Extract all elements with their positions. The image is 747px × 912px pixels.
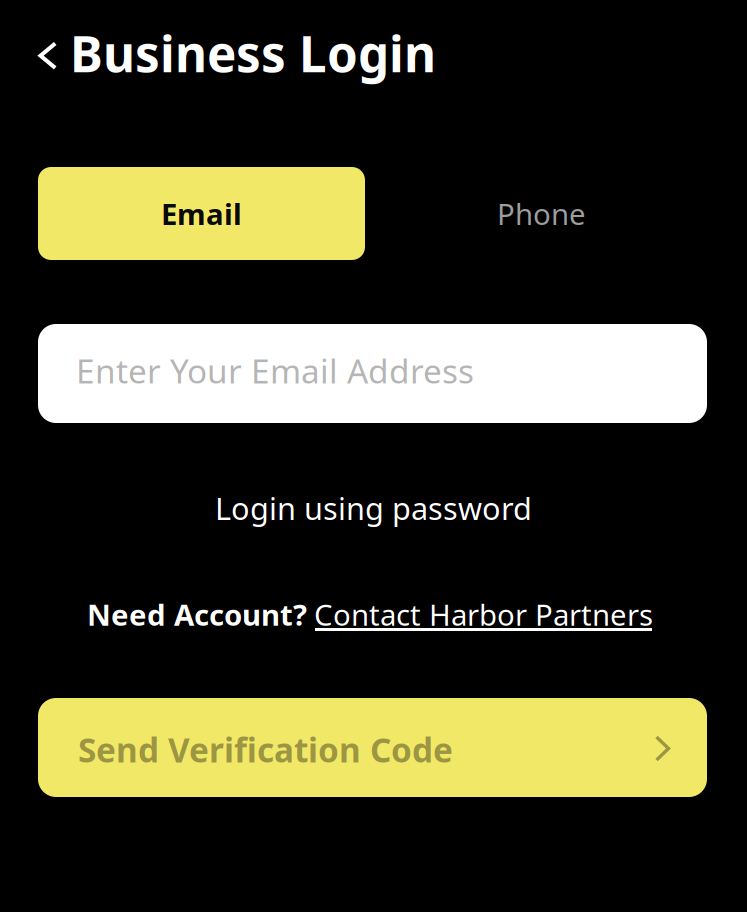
button[interactable]: Back [26, 26, 70, 80]
button[interactable]: Email [38, 167, 365, 260]
staticText: Phone [497, 194, 586, 233]
staticText: Need Account? [87, 595, 307, 634]
staticText: Send Verification Code [78, 727, 453, 772]
staticText: Contact Harbor Partners [314, 595, 653, 634]
button[interactable]: Contact Harbor Partners [315, 595, 652, 641]
button[interactable]: Login using password [211, 485, 535, 531]
staticText: Business Login [70, 20, 436, 86]
staticText: Email [161, 194, 242, 233]
button[interactable]: Phone [378, 167, 705, 260]
staticText: Enter Your Email Address [76, 348, 474, 393]
button[interactable]: Send Verification Code [38, 698, 707, 797]
button[interactable]: Enter Your Email Address [38, 324, 707, 423]
staticText: Login using password [215, 488, 532, 528]
